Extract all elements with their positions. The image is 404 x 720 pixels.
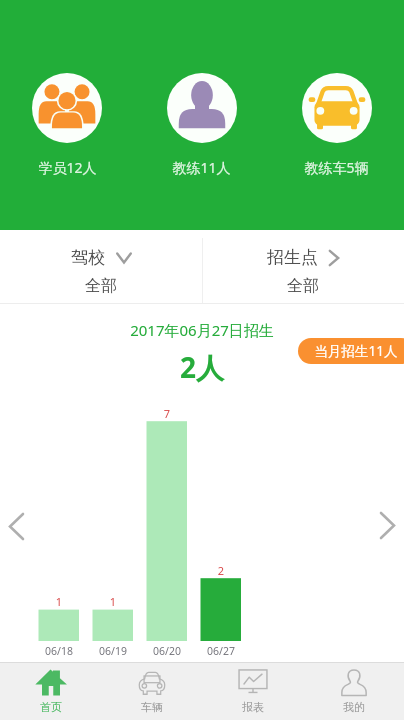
staticText: 当月招生11人 [298,342,404,360]
staticText: 车辆 [141,700,163,714]
button[interactable]: 驾校 [0,230,202,304]
button[interactable]: 我的 [303,663,404,720]
staticText: 2017年06月27日招生 [0,320,404,340]
staticText: 我的 [343,700,365,714]
staticText: 2 [196,563,246,578]
button[interactable]: 教练11人 [134,0,269,177]
staticText: 报表 [242,700,264,714]
button[interactable]: 当月招生11人 [298,338,404,364]
staticText: 教练车5辆 [304,158,369,177]
staticText: 1 [88,594,138,609]
staticText: 驾校 [71,247,105,268]
staticText: 06/27 [194,644,248,658]
staticText: 06/18 [32,644,86,658]
staticText: 首页 [40,700,62,714]
staticText: 教练11人 [172,158,231,177]
staticText: 06/19 [86,644,140,658]
staticText: 全部 [85,276,117,296]
button[interactable]: Next period [372,510,403,541]
staticText: 7 [142,406,192,421]
staticText: 学员12人 [38,158,97,177]
button[interactable]: 学员12人 [0,0,134,177]
button[interactable]: 招生点 [202,230,404,304]
staticText: 06/20 [140,644,194,658]
staticText: 全部 [287,276,319,296]
button[interactable]: 报表 [202,663,303,720]
button[interactable]: 车辆 [101,663,202,720]
staticText: 2人 [0,348,404,386]
button[interactable]: 教练车5辆 [269,0,404,177]
staticText: 招生点 [267,247,318,268]
button[interactable]: Previous period [1,511,32,542]
button[interactable]: 首页 [0,663,101,720]
staticText: 1 [34,594,84,609]
